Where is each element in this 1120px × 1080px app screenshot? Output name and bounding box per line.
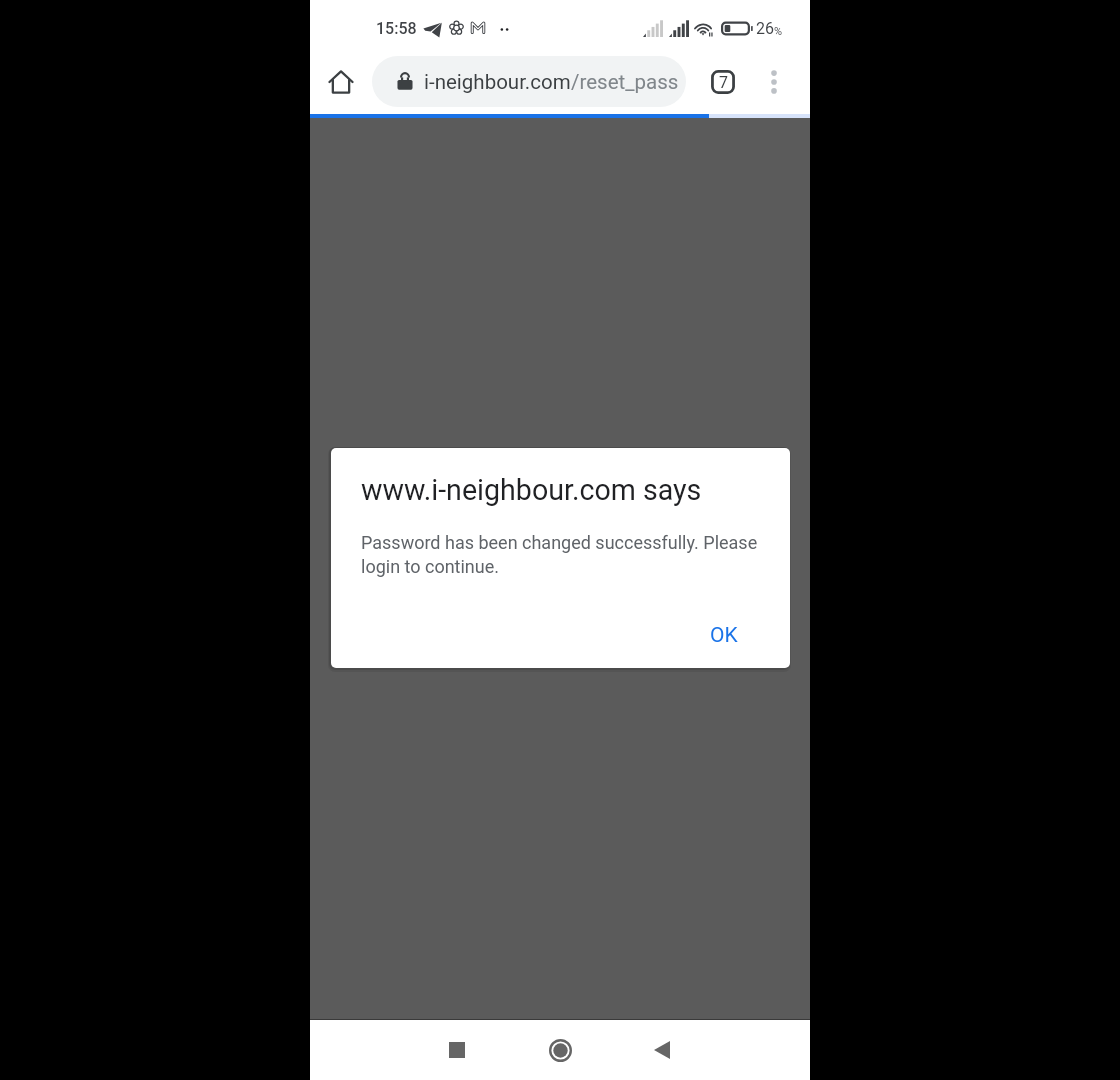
staticText: % — [774, 25, 783, 38]
button[interactable]: Tabs: 7 — [699, 56, 747, 108]
staticText: i-neighbour.com — [424, 70, 571, 94]
staticText: OK — [710, 623, 738, 648]
button[interactable]: Home — [530, 1020, 590, 1080]
staticText: 15:58 — [376, 19, 417, 38]
button[interactable]: i-neighbour.com — [372, 56, 686, 107]
staticText: 26 — [756, 19, 774, 38]
staticText: Password has been changed successfully. … — [361, 532, 771, 578]
button[interactable]: Home — [310, 56, 372, 114]
button[interactable]: OK — [693, 611, 755, 659]
button[interactable]: More options — [750, 56, 798, 108]
staticText: /reset_pass — [571, 70, 679, 94]
button[interactable]: Back — [632, 1020, 692, 1080]
staticText: www.i-neighbour.com says — [361, 473, 702, 507]
button[interactable]: Recent apps — [427, 1020, 487, 1080]
staticText: 7 — [719, 73, 728, 92]
